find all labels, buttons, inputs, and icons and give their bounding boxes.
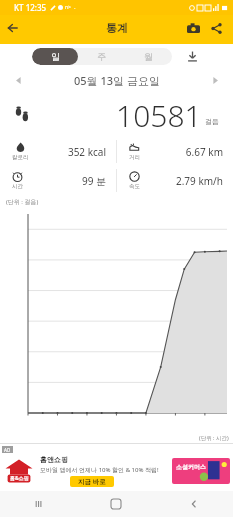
button[interactable]: AD: [0, 443, 233, 491]
button[interactable]: 월: [125, 48, 172, 65]
staticText: 걸음: [205, 117, 219, 126]
staticText: 352 kcal: [29, 145, 106, 159]
staticText: 시간: [12, 183, 23, 190]
staticText: 05월 13일 금요일: [74, 73, 160, 88]
button[interactable]: Back: [0, 15, 26, 41]
button[interactable]: 지금 바로: [70, 476, 114, 487]
button[interactable]: Camera: [181, 16, 205, 40]
button[interactable]: 속도: [117, 166, 233, 195]
staticText: KT 12:35: [14, 2, 47, 13]
staticText: 속도: [129, 183, 140, 190]
staticText: 99 분: [23, 174, 106, 188]
button[interactable]: Back: [155, 491, 233, 517]
staticText: 월: [144, 51, 153, 62]
staticText: 홈&쇼핑: [10, 475, 29, 482]
button[interactable]: Home: [77, 491, 155, 517]
button[interactable]: Previous day: [8, 70, 28, 90]
staticText: 거리: [129, 154, 140, 161]
staticText: 소셜커머스: [176, 463, 206, 471]
button[interactable]: 일: [32, 48, 78, 65]
staticText: 지금 바로: [78, 477, 106, 486]
staticText: 6.67 km: [140, 145, 223, 159]
staticText: (단위 : 시간): [199, 434, 229, 442]
staticText: 주: [97, 51, 106, 62]
staticText: 칼로리: [12, 154, 29, 161]
button[interactable]: 칼로리: [0, 137, 116, 166]
staticText: ·: [74, 4, 76, 12]
button[interactable]: 시간: [0, 166, 116, 195]
staticText: 모바일 앱에서 언제나 10% 할인 & 10% 적립!: [40, 466, 159, 474]
staticText: 통계: [106, 21, 128, 35]
button[interactable]: Share: [205, 17, 227, 39]
staticText: (단위 : 걸음): [6, 198, 39, 206]
staticText: 일: [51, 51, 60, 62]
staticText: 10581: [116, 95, 202, 136]
button[interactable]: Next day: [205, 70, 225, 90]
button[interactable]: 주: [78, 48, 125, 65]
staticText: 2.79 km/h: [140, 174, 223, 188]
staticText: AD: [4, 447, 11, 453]
button[interactable]: Download: [182, 46, 202, 66]
button[interactable]: Recents: [0, 491, 77, 517]
staticText: 홈앤쇼핑: [40, 455, 68, 464]
staticText: n>: [65, 4, 71, 11]
button[interactable]: 거리: [117, 137, 233, 166]
